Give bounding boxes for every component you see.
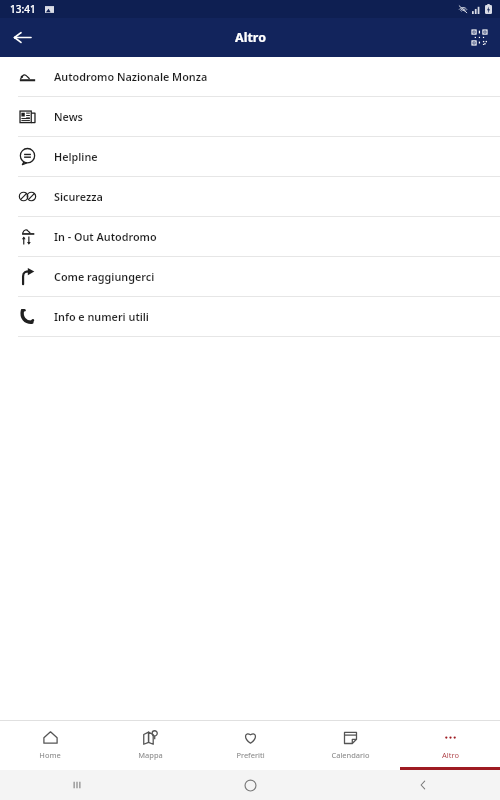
button[interactable]: Info e numeri utili xyxy=(0,297,500,336)
staticText: Altro xyxy=(442,750,459,760)
button[interactable]: Autodromo Nazionale Monza xyxy=(0,57,500,96)
staticText: In - Out Autodromo xyxy=(54,229,157,244)
staticText: Come raggiungerci xyxy=(54,269,155,284)
staticText: Home xyxy=(39,750,61,760)
button[interactable]: Preferiti xyxy=(200,720,300,770)
button[interactable]: Calendario xyxy=(300,720,400,770)
staticText: Autodromo Nazionale Monza xyxy=(54,69,208,84)
staticText: Sicurezza xyxy=(54,189,103,204)
button[interactable]: Home xyxy=(233,770,267,800)
button[interactable]: Back xyxy=(0,18,44,57)
staticText: Helpline xyxy=(54,149,98,164)
staticText: Preferiti xyxy=(236,750,265,760)
button[interactable]: Come raggiungerci xyxy=(0,257,500,296)
button[interactable]: Sicurezza xyxy=(0,177,500,216)
staticText: News xyxy=(54,109,83,124)
staticText: 13:41 xyxy=(10,2,36,16)
button[interactable]: News xyxy=(0,97,500,136)
staticText: Altro xyxy=(235,29,266,46)
button[interactable]: Home xyxy=(0,720,100,770)
button[interactable]: Scan QR code xyxy=(458,18,500,57)
staticText: Info e numeri utili xyxy=(54,309,149,324)
button[interactable]: Back xyxy=(406,770,440,800)
button[interactable]: Altro xyxy=(400,720,500,770)
button[interactable]: Recent apps xyxy=(60,770,94,800)
staticText: Mappa xyxy=(138,750,163,760)
button[interactable]: In - Out Autodromo xyxy=(0,217,500,256)
button[interactable]: Mappa xyxy=(100,720,200,770)
button[interactable]: Helpline xyxy=(0,137,500,176)
staticText: Calendario xyxy=(331,750,370,760)
